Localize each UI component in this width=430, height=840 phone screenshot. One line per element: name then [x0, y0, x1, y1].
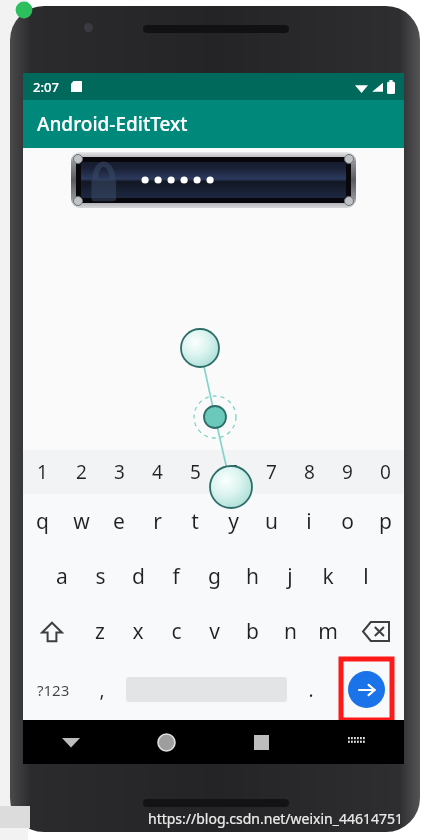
button[interactable]: [71, 152, 356, 208]
button[interactable]: 3: [100, 450, 138, 494]
button[interactable]: k: [309, 549, 347, 604]
staticText: o: [341, 507, 354, 536]
staticText: e: [113, 507, 125, 536]
button[interactable]: l: [347, 549, 385, 604]
staticText: i: [306, 507, 312, 536]
button[interactable]: w: [62, 494, 100, 549]
staticText: 3: [114, 459, 125, 485]
button[interactable]: ,: [84, 659, 120, 720]
button[interactable]: n: [271, 604, 309, 659]
staticText: ,: [99, 677, 105, 703]
staticText: d: [132, 562, 145, 591]
staticText: 1: [37, 459, 48, 485]
button[interactable]: b: [233, 604, 271, 659]
staticText: m: [318, 617, 338, 646]
button[interactable]: Recents: [214, 720, 309, 764]
staticText: 8: [304, 459, 315, 485]
button[interactable]: p: [366, 494, 404, 549]
button[interactable]: a: [43, 549, 81, 604]
staticText: 2: [76, 459, 87, 485]
button[interactable]: c: [157, 604, 195, 659]
button[interactable]: j: [271, 549, 309, 604]
staticText: p: [379, 507, 392, 536]
button[interactable]: 1: [23, 450, 62, 494]
button[interactable]: Hide keyboard: [309, 720, 404, 764]
button[interactable]: x: [119, 604, 157, 659]
button[interactable]: 0: [366, 450, 404, 494]
staticText: 2:07: [33, 78, 59, 96]
button[interactable]: z: [81, 604, 119, 659]
staticText: b: [246, 617, 259, 646]
staticText: y: [228, 507, 239, 536]
button[interactable]: 7: [252, 450, 290, 494]
staticText: z: [95, 617, 105, 646]
button[interactable]: q: [23, 494, 62, 549]
button[interactable]: Backspace: [347, 604, 404, 659]
button[interactable]: [120, 659, 293, 720]
staticText: v: [209, 617, 220, 646]
staticText: https://blog.csdn.net/weixin_44614751: [148, 809, 404, 828]
button[interactable]: Back: [23, 720, 119, 764]
button[interactable]: r: [138, 494, 176, 549]
staticText: t: [191, 507, 199, 536]
button[interactable]: ?123: [23, 659, 84, 720]
staticText: s: [95, 562, 106, 591]
button[interactable]: 2: [62, 450, 100, 494]
button[interactable]: Shift: [23, 604, 81, 659]
button[interactable]: o: [328, 494, 366, 549]
staticText: a: [56, 562, 68, 591]
button[interactable]: Home: [119, 720, 214, 764]
staticText: c: [171, 617, 182, 646]
staticText: 4: [152, 459, 163, 485]
button[interactable]: 6: [214, 450, 252, 494]
staticText: r: [153, 507, 162, 536]
staticText: Android-EditText: [37, 111, 188, 137]
staticText: u: [265, 507, 278, 536]
staticText: ?123: [37, 680, 70, 700]
staticText: 9: [342, 459, 353, 485]
staticText: 6: [228, 459, 239, 485]
button[interactable]: 9: [328, 450, 366, 494]
staticText: 5: [190, 459, 201, 485]
button[interactable]: f: [157, 549, 195, 604]
button[interactable]: g: [195, 549, 233, 604]
staticText: 0: [380, 459, 391, 485]
button[interactable]: m: [309, 604, 347, 659]
staticText: f: [172, 562, 180, 591]
staticText: n: [284, 617, 297, 646]
button[interactable]: y: [214, 494, 252, 549]
staticText: k: [322, 562, 334, 591]
button[interactable]: 5: [176, 450, 214, 494]
staticText: q: [36, 507, 49, 536]
button[interactable]: s: [81, 549, 119, 604]
button[interactable]: 4: [138, 450, 176, 494]
button[interactable]: d: [119, 549, 157, 604]
staticText: j: [287, 562, 293, 591]
staticText: 7: [266, 459, 277, 485]
staticText: h: [246, 562, 259, 591]
button[interactable]: h: [233, 549, 271, 604]
button[interactable]: u: [252, 494, 290, 549]
button[interactable]: Android-EditText: [23, 100, 404, 148]
button[interactable]: t: [176, 494, 214, 549]
button[interactable]: 8: [290, 450, 328, 494]
button[interactable]: Enter: [341, 659, 392, 720]
button[interactable]: e: [100, 494, 138, 549]
button[interactable]: i: [290, 494, 328, 549]
staticText: w: [73, 507, 90, 536]
staticText: g: [208, 562, 221, 591]
button[interactable]: v: [195, 604, 233, 659]
staticText: .: [308, 677, 314, 703]
staticText: x: [132, 617, 144, 646]
staticText: l: [363, 562, 369, 591]
button[interactable]: .: [293, 659, 329, 720]
